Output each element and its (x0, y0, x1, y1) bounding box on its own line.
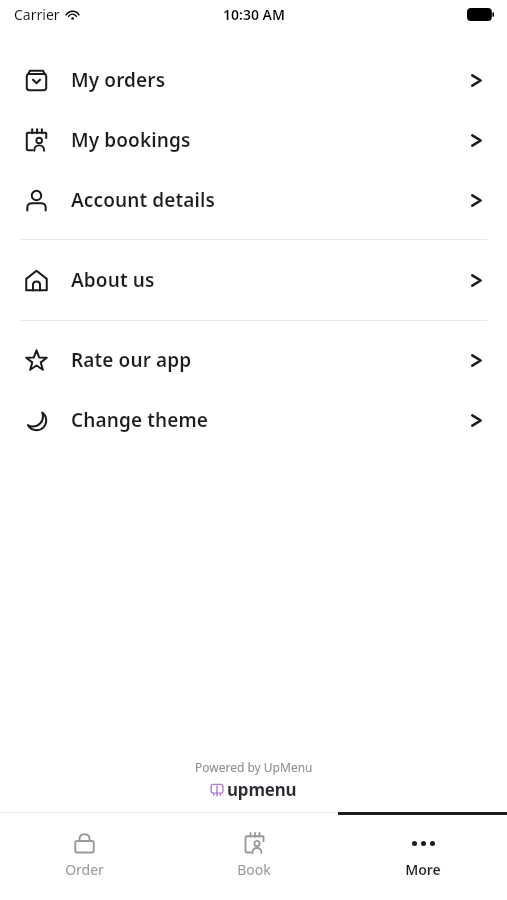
staticText: Rate our app (71, 347, 192, 373)
button[interactable]: Order (0, 812, 169, 900)
button[interactable]: Change theme (0, 390, 507, 450)
staticText: My orders (71, 67, 166, 93)
button[interactable]: Rate our app (0, 330, 507, 390)
staticText: 10:30 AM (223, 5, 285, 24)
button[interactable]: My bookings (0, 110, 507, 170)
button[interactable]: My orders (0, 50, 507, 110)
staticText: Powered by UpMenu (195, 759, 313, 775)
button[interactable]: More (338, 812, 507, 900)
staticText: Change theme (71, 407, 208, 433)
staticText: Account details (71, 187, 215, 213)
staticText: Book (237, 860, 271, 879)
button[interactable]: Account details (0, 170, 507, 230)
staticText: Carrier (14, 5, 60, 24)
staticText: About us (71, 267, 155, 293)
staticText: More (405, 860, 441, 879)
staticText: Order (65, 860, 104, 879)
staticText: upmenu (227, 778, 297, 801)
staticText: My bookings (71, 127, 191, 153)
button[interactable]: About us (0, 250, 507, 310)
button[interactable]: Book (169, 812, 338, 900)
